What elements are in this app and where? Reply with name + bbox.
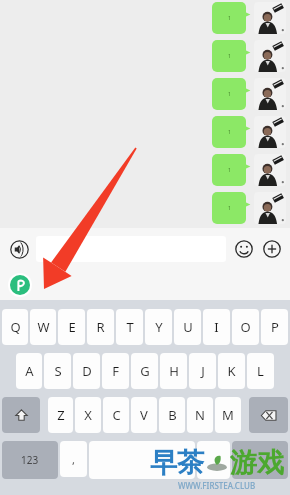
- staticText: W: [37, 318, 50, 336]
- button[interactable]: H: [160, 353, 187, 389]
- button[interactable]: Avatar: [254, 154, 286, 186]
- staticText: P: [271, 318, 279, 336]
- button[interactable]: Shift: [2, 397, 40, 433]
- staticText: Q: [10, 318, 21, 336]
- button[interactable]: Avatar: [254, 40, 286, 72]
- button[interactable]: L: [247, 353, 274, 389]
- staticText: ,: [72, 452, 75, 467]
- staticText: R: [96, 318, 105, 336]
- button[interactable]: Emoji: [232, 237, 256, 261]
- button[interactable]: B: [159, 397, 185, 433]
- staticText: V: [140, 406, 148, 424]
- button[interactable]: D: [73, 353, 100, 389]
- staticText: N: [195, 406, 205, 424]
- button[interactable]: 123: [2, 441, 58, 479]
- staticText: S: [54, 362, 62, 380]
- button[interactable]: Voice input: [6, 236, 32, 262]
- button[interactable]: W: [30, 309, 56, 345]
- button[interactable]: E: [58, 309, 85, 345]
- staticText: WWW.FIRSTEA.CLUB: [178, 480, 256, 491]
- button[interactable]: Avatar: [254, 78, 286, 110]
- button[interactable]: 1: [212, 154, 246, 186]
- button[interactable]: A: [16, 353, 42, 389]
- button[interactable]: X: [75, 397, 101, 433]
- staticText: 1: [228, 167, 231, 174]
- button[interactable]: G: [131, 353, 158, 389]
- staticText: M: [222, 406, 234, 424]
- button[interactable]: R: [87, 309, 114, 345]
- staticText: X: [84, 406, 92, 424]
- staticText: 早茶: [150, 446, 204, 480]
- button[interactable]: 1: [212, 192, 246, 224]
- button[interactable]: Plugin: [10, 275, 30, 295]
- button[interactable]: T: [116, 309, 143, 345]
- button[interactable]: O: [232, 309, 259, 345]
- staticText: L: [257, 362, 264, 380]
- staticText: I: [214, 318, 219, 336]
- button[interactable]: Backspace: [249, 397, 288, 433]
- button[interactable]: I: [203, 309, 230, 345]
- button[interactable]: Q: [2, 309, 28, 345]
- button[interactable]: [232, 441, 288, 479]
- staticText: B: [168, 406, 177, 424]
- button[interactable]: [197, 441, 230, 479]
- staticText: C: [112, 406, 121, 424]
- button[interactable]: P: [261, 309, 288, 345]
- staticText: 游戏: [230, 446, 284, 480]
- button[interactable]: 1: [212, 116, 246, 148]
- button[interactable]: S: [44, 353, 71, 389]
- button[interactable]: C: [103, 397, 129, 433]
- button[interactable]: 1: [212, 40, 246, 72]
- button[interactable]: N: [187, 397, 213, 433]
- button[interactable]: V: [131, 397, 157, 433]
- staticText: E: [68, 318, 76, 336]
- staticText: Z: [57, 406, 65, 424]
- button[interactable]: Avatar: [254, 192, 286, 224]
- button[interactable]: M: [215, 397, 241, 433]
- button[interactable]: [89, 441, 195, 479]
- staticText: 1: [228, 205, 231, 212]
- staticText: F: [112, 362, 119, 380]
- button[interactable]: J: [189, 353, 216, 389]
- staticText: 1: [228, 53, 231, 60]
- button[interactable]: Y: [145, 309, 172, 345]
- staticText: D: [82, 362, 92, 380]
- staticText: 123: [21, 453, 39, 467]
- button[interactable]: Z: [48, 397, 73, 433]
- staticText: J: [201, 362, 205, 380]
- staticText: K: [227, 362, 236, 380]
- button[interactable]: ,: [60, 441, 87, 477]
- staticText: Y: [155, 318, 163, 336]
- button[interactable]: More: [260, 237, 284, 261]
- button[interactable]: Avatar: [254, 2, 286, 34]
- button[interactable]: [36, 236, 226, 262]
- staticText: U: [183, 318, 193, 336]
- button[interactable]: 1: [212, 2, 246, 34]
- staticText: 1: [228, 15, 231, 22]
- button[interactable]: Avatar: [254, 116, 286, 148]
- staticText: 1: [228, 129, 231, 136]
- staticText: G: [140, 362, 150, 380]
- staticText: T: [126, 318, 134, 336]
- button[interactable]: U: [174, 309, 201, 345]
- staticText: O: [240, 318, 251, 336]
- button[interactable]: F: [102, 353, 129, 389]
- staticText: H: [169, 362, 179, 380]
- staticText: 1: [228, 91, 231, 98]
- button[interactable]: K: [218, 353, 245, 389]
- button[interactable]: 1: [212, 78, 246, 110]
- staticText: A: [25, 362, 34, 380]
